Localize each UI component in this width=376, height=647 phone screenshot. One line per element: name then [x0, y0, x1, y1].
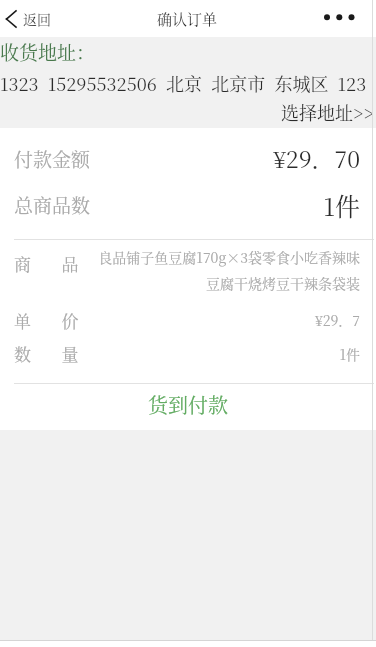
staticText: 数 量	[14, 341, 79, 365]
staticText: 1323 15295532506 北京 北京市 东城区 123	[0, 70, 367, 96]
staticText: 选择地址>>	[0, 99, 374, 125]
staticText: 返回	[23, 9, 51, 29]
staticText: 商 品	[14, 251, 79, 275]
staticText: 付款金额	[14, 145, 91, 172]
button[interactable]: 返回	[0, 0, 376, 37]
staticText: 确认订单	[157, 8, 218, 30]
staticText: 1件	[0, 187, 360, 223]
staticText: 良品铺子鱼豆腐170g×3袋零食小吃香辣味豆腐干烧烤豆干辣条袋装	[90, 247, 360, 293]
staticText: 1件	[0, 344, 360, 364]
button[interactable]: 收货地址：	[0, 38, 376, 128]
staticText: 货到付款	[148, 390, 228, 419]
staticText: ¥29．70	[0, 142, 360, 175]
staticText: 单 价	[14, 308, 79, 332]
staticText: 总商品数	[14, 191, 91, 218]
button[interactable]: 货到付款	[0, 384, 376, 430]
button[interactable]: More options	[330, 0, 376, 37]
staticText: 收货地址：	[0, 38, 96, 65]
staticText: ¥29．7	[0, 310, 360, 330]
